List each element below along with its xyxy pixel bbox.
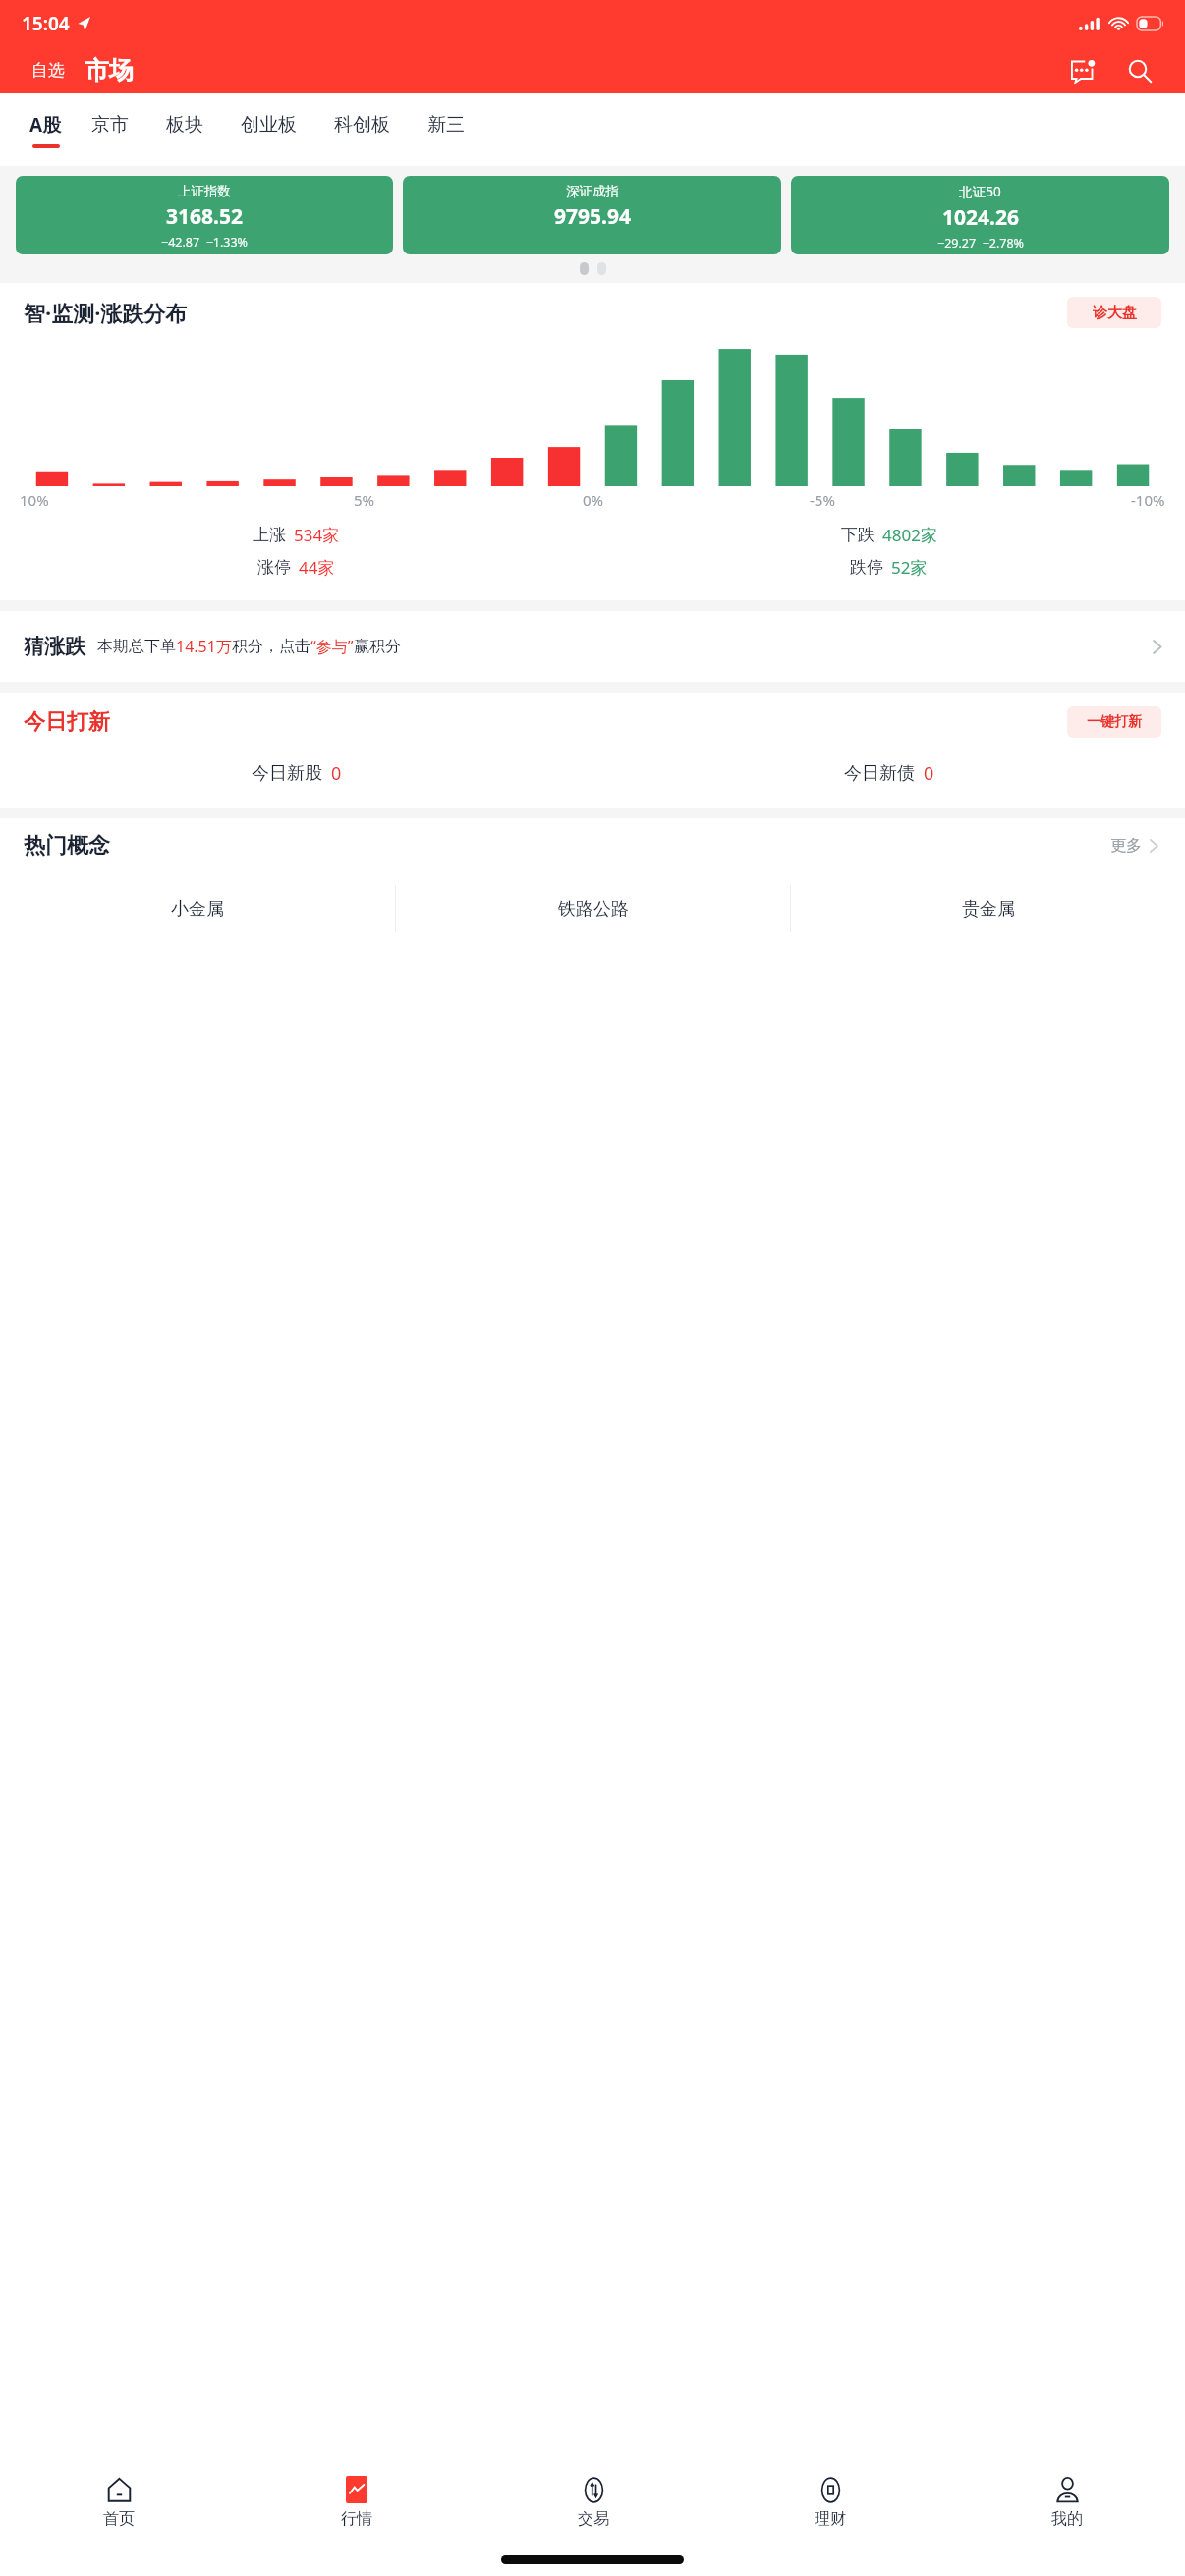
- staticText: 深证成指: [566, 183, 619, 199]
- staticText: 10%: [20, 490, 49, 510]
- staticText: “参与”: [310, 636, 354, 657]
- button[interactable]: 创业板: [227, 113, 310, 147]
- button[interactable]: Search: [1122, 53, 1157, 88]
- staticText: 534家: [294, 524, 340, 546]
- staticText: 44家: [299, 556, 335, 579]
- staticText: 创业板: [241, 113, 297, 137]
- staticText: A股: [29, 112, 62, 138]
- staticText: 本期总下单: [97, 637, 176, 656]
- staticText: 下跌: [841, 525, 875, 545]
- staticText: -10%: [1131, 490, 1165, 510]
- staticText: 4802家: [882, 524, 937, 546]
- staticText: 0%: [583, 490, 604, 510]
- staticText: 上涨: [253, 525, 286, 545]
- staticText: 新三: [427, 113, 465, 137]
- staticText: 北证50: [959, 183, 1001, 200]
- staticText: 9795.94: [554, 202, 631, 231]
- staticText: 板块: [166, 113, 203, 137]
- staticText: 贵金属: [962, 898, 1015, 921]
- staticText: 15:04: [22, 11, 70, 36]
- staticText: -5%: [810, 490, 835, 510]
- staticText: 京市: [91, 113, 129, 137]
- staticText: 热门概念: [24, 832, 110, 860]
- staticText: 我的: [1051, 2509, 1083, 2529]
- button[interactable]: 深证成指: [403, 176, 781, 254]
- button[interactable]: 京市: [78, 113, 142, 147]
- button[interactable]: 自选: [28, 56, 69, 84]
- button[interactable]: 上证指数: [16, 176, 393, 254]
- button[interactable]: 北证50: [791, 176, 1169, 254]
- staticText: 行情: [341, 2509, 372, 2529]
- staticText: 理财: [815, 2509, 846, 2529]
- button[interactable]: 理财: [711, 2460, 948, 2543]
- button[interactable]: 首页: [0, 2460, 238, 2543]
- staticText: 小金属: [171, 898, 224, 921]
- button[interactable]: 今日新债: [592, 761, 1185, 786]
- staticText: 今日打新: [24, 708, 110, 736]
- button[interactable]: 猜涨跌: [0, 611, 1185, 682]
- button[interactable]: 贵金属: [791, 885, 1185, 932]
- staticText: 0: [331, 761, 342, 786]
- button[interactable]: 诊大盘: [1067, 297, 1161, 328]
- button[interactable]: A股: [24, 112, 68, 148]
- staticText: 自选: [31, 60, 65, 81]
- staticText: 交易: [578, 2509, 609, 2529]
- staticText: 涨停: [257, 557, 291, 578]
- button[interactable]: 更多: [1106, 832, 1165, 860]
- staticText: 跌停: [850, 557, 883, 578]
- button[interactable]: 板块: [152, 113, 217, 147]
- staticText: 一键打新: [1087, 713, 1142, 731]
- button[interactable]: 小金属: [0, 885, 395, 932]
- staticText: 0: [924, 761, 934, 786]
- staticText: 猜涨跌: [24, 634, 85, 659]
- staticText: 赢积分: [354, 637, 401, 656]
- staticText: 科创板: [334, 113, 390, 137]
- button[interactable]: 行情: [238, 2460, 475, 2543]
- button[interactable]: 铁路公路: [396, 885, 790, 932]
- staticText: 智·监测·涨跌分布: [24, 298, 188, 327]
- button[interactable]: 一键打新: [1067, 706, 1161, 738]
- staticText: 14.51万: [176, 636, 232, 657]
- staticText: 铁路公路: [558, 898, 629, 921]
- staticText: 更多: [1110, 836, 1142, 856]
- staticText: 积分，点击: [232, 637, 310, 656]
- staticText: 今日新债: [844, 762, 915, 785]
- button[interactable]: 今日新股: [0, 761, 592, 786]
- button[interactable]: 科创板: [320, 113, 404, 147]
- staticText: 52家: [891, 556, 928, 579]
- button[interactable]: 市场: [81, 53, 138, 87]
- staticText: 上证指数: [178, 183, 231, 199]
- staticText: −29.27 −2.78%: [937, 235, 1024, 249]
- button[interactable]: 我的: [948, 2460, 1185, 2543]
- staticText: 首页: [103, 2509, 135, 2529]
- staticText: −42.87 −1.33%: [161, 234, 248, 249]
- staticText: 5%: [354, 490, 375, 510]
- staticText: 今日新股: [252, 762, 322, 785]
- staticText: 1024.26: [942, 203, 1019, 232]
- staticText: 市场: [85, 55, 134, 85]
- button[interactable]: 新三: [414, 113, 479, 147]
- staticText: 3168.52: [166, 202, 243, 231]
- staticText: 诊大盘: [1093, 304, 1137, 322]
- button[interactable]: Messages: [1065, 53, 1100, 88]
- button[interactable]: 交易: [475, 2460, 711, 2543]
